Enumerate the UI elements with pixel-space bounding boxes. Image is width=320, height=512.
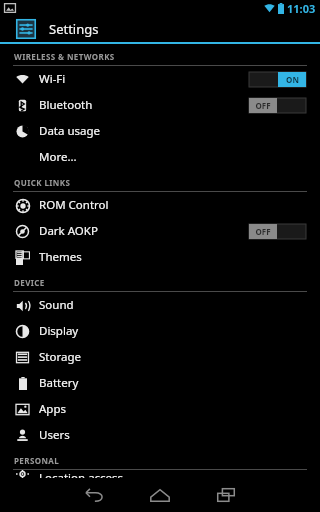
button[interactable]: Themes: [0, 244, 320, 270]
staticText: Battery: [39, 375, 79, 391]
staticText: More...: [39, 149, 77, 165]
button[interactable]: Settings: [0, 16, 320, 42]
button[interactable]: ROM Control: [0, 192, 320, 218]
button[interactable]: Users: [0, 422, 320, 448]
button[interactable]: Display: [0, 318, 320, 344]
button[interactable]: Battery: [0, 370, 320, 396]
staticText: Display: [39, 323, 79, 339]
staticText: WIRELESS & NETWORKS: [14, 51, 115, 62]
button[interactable]: Data usage: [0, 118, 320, 144]
staticText: Wi-Fi: [39, 71, 66, 87]
button[interactable]: Recent apps: [205, 478, 247, 512]
staticText: Data usage: [39, 123, 101, 139]
button[interactable]: Apps: [0, 396, 320, 422]
button[interactable]: Bluetooth: [0, 92, 320, 118]
staticText: Sound: [39, 297, 74, 313]
staticText: 11:03: [287, 1, 316, 16]
staticText: Users: [39, 427, 70, 443]
staticText: ROM Control: [39, 197, 109, 213]
staticText: Settings: [49, 20, 99, 38]
staticText: OFF: [255, 100, 271, 111]
staticText: ON: [286, 74, 299, 85]
button[interactable]: Back: [73, 478, 115, 512]
button[interactable]: Dark AOKP: [0, 218, 320, 244]
button[interactable]: Switch off: [249, 98, 306, 113]
button[interactable]: Sound: [0, 292, 320, 318]
button[interactable]: Wi-Fi: [0, 66, 320, 92]
staticText: Storage: [39, 349, 81, 365]
button[interactable]: More...: [0, 144, 320, 170]
button[interactable]: Home: [139, 478, 181, 512]
staticText: Bluetooth: [39, 97, 93, 113]
button[interactable]: Location access: [0, 470, 320, 478]
staticText: Apps: [39, 401, 67, 417]
staticText: OFF: [255, 226, 271, 237]
staticText: DEVICE: [14, 277, 45, 288]
staticText: Dark AOKP: [39, 223, 98, 239]
button[interactable]: Switch on: [249, 72, 306, 87]
button[interactable]: Storage: [0, 344, 320, 370]
staticText: QUICK LINKS: [14, 177, 71, 188]
staticText: Themes: [39, 249, 82, 265]
button[interactable]: Switch off: [249, 224, 306, 239]
staticText: Location access: [39, 470, 124, 478]
staticText: PERSONAL: [14, 455, 60, 466]
